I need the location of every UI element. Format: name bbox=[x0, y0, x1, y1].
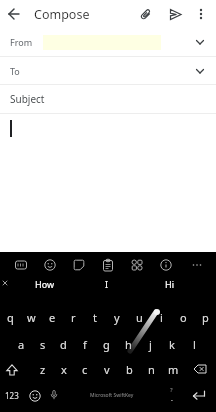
button[interactable]: From bbox=[0, 28, 216, 56]
staticText: u bbox=[136, 310, 143, 325]
button[interactable]: d bbox=[53, 332, 74, 356]
staticText: q bbox=[7, 310, 14, 325]
button[interactable] bbox=[184, 358, 216, 381]
button[interactable]: i bbox=[150, 305, 172, 329]
button[interactable]: v bbox=[96, 358, 118, 381]
staticText: h bbox=[125, 337, 132, 352]
button[interactable] bbox=[151, 256, 180, 274]
button[interactable]: z bbox=[32, 358, 53, 381]
staticText: From bbox=[10, 36, 33, 48]
button[interactable]: Hi bbox=[138, 274, 200, 294]
staticText: Microsoft SwiftKey bbox=[90, 392, 134, 399]
button[interactable]: c bbox=[74, 358, 96, 381]
button[interactable]: f bbox=[74, 332, 95, 356]
button[interactable]: w bbox=[21, 305, 42, 329]
button[interactable]: y bbox=[106, 305, 128, 329]
staticText: To bbox=[10, 65, 20, 77]
staticText: r bbox=[71, 310, 76, 325]
button[interactable]: l bbox=[183, 332, 205, 356]
staticText: b bbox=[126, 362, 133, 377]
button[interactable]: h bbox=[117, 332, 139, 356]
staticText: c bbox=[82, 362, 88, 377]
staticText: m bbox=[168, 362, 179, 377]
button[interactable]: How bbox=[14, 274, 76, 294]
button[interactable] bbox=[190, 3, 212, 25]
button[interactable]: I bbox=[76, 274, 138, 294]
button[interactable] bbox=[132, 1, 158, 27]
staticText: x bbox=[61, 362, 67, 377]
staticText: p bbox=[202, 310, 209, 325]
button[interactable] bbox=[24, 381, 44, 409]
button[interactable]: Microsoft SwiftKey bbox=[64, 381, 160, 409]
button[interactable]: u bbox=[128, 305, 150, 329]
button[interactable]: 123 bbox=[0, 381, 24, 409]
staticText: Subject bbox=[10, 92, 45, 106]
staticText: o bbox=[180, 310, 187, 325]
button[interactable]: p bbox=[194, 305, 216, 329]
staticText: I bbox=[105, 278, 109, 290]
staticText: v bbox=[104, 362, 110, 377]
button[interactable] bbox=[162, 1, 188, 27]
staticText: i bbox=[160, 310, 163, 325]
button[interactable]: g bbox=[95, 332, 117, 356]
staticText: w bbox=[27, 310, 36, 325]
button[interactable]: t bbox=[84, 305, 106, 329]
button[interactable] bbox=[184, 256, 210, 274]
button[interactable] bbox=[122, 256, 151, 274]
staticText: . bbox=[171, 394, 173, 404]
button[interactable]: j bbox=[139, 332, 161, 356]
staticText: s bbox=[40, 337, 46, 352]
button[interactable] bbox=[44, 381, 64, 409]
button[interactable] bbox=[0, 114, 216, 252]
button[interactable] bbox=[182, 381, 216, 409]
button[interactable]: n bbox=[140, 358, 162, 381]
staticText: z bbox=[40, 362, 46, 377]
button[interactable]: s bbox=[32, 332, 53, 356]
button[interactable]: x bbox=[53, 358, 74, 381]
button[interactable] bbox=[0, 0, 28, 28]
button[interactable]: q bbox=[0, 305, 21, 329]
staticText: 123 bbox=[5, 390, 19, 401]
staticText: Compose bbox=[34, 6, 90, 23]
staticText: t bbox=[93, 310, 97, 325]
button[interactable]: k bbox=[161, 332, 183, 356]
staticText: j bbox=[149, 337, 152, 352]
staticText: How bbox=[35, 278, 55, 290]
button[interactable]: r bbox=[63, 305, 84, 329]
button[interactable] bbox=[6, 256, 35, 274]
button[interactable] bbox=[64, 256, 93, 274]
button[interactable]: To bbox=[0, 57, 216, 84]
staticText: ? bbox=[170, 386, 173, 394]
button[interactable]: a bbox=[11, 332, 32, 356]
staticText: Hi bbox=[165, 278, 174, 290]
staticText: n bbox=[148, 362, 155, 377]
staticText: f bbox=[83, 337, 87, 352]
button[interactable] bbox=[35, 256, 64, 274]
button[interactable]: ? bbox=[160, 381, 182, 409]
staticText: y bbox=[114, 310, 120, 325]
staticText: l bbox=[193, 337, 196, 352]
staticText: k bbox=[169, 337, 175, 352]
button[interactable]: Subject bbox=[0, 85, 216, 113]
button[interactable] bbox=[93, 256, 122, 274]
staticText: e bbox=[49, 310, 56, 325]
staticText: g bbox=[103, 337, 110, 352]
button[interactable]: o bbox=[172, 305, 194, 329]
button[interactable]: e bbox=[42, 305, 63, 329]
button[interactable] bbox=[0, 358, 32, 381]
button[interactable]: m bbox=[162, 358, 184, 381]
button[interactable]: b bbox=[118, 358, 140, 381]
staticText: a bbox=[18, 337, 25, 352]
staticText: d bbox=[60, 337, 67, 352]
